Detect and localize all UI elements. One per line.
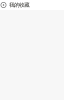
staticText: 我的收藏 (9, 2, 29, 8)
